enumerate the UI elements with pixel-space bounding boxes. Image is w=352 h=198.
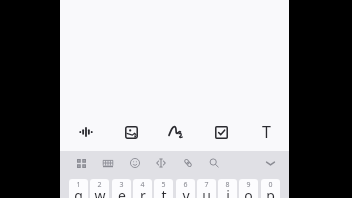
button[interactable]: 0 [261, 179, 280, 198]
staticText: 4 [140, 180, 145, 190]
staticText: 6 [183, 180, 188, 190]
button[interactable]: 8 [218, 179, 237, 198]
staticText: T [262, 121, 271, 143]
staticText: 3 [119, 180, 124, 190]
button[interactable]: Checklist [204, 115, 238, 149]
staticText: o [244, 186, 253, 198]
staticText: i [226, 186, 230, 198]
button[interactable]: Emoji [124, 152, 146, 174]
staticText: 7 [204, 180, 209, 190]
button[interactable]: 5 [154, 179, 173, 198]
button[interactable]: 4 [133, 179, 152, 198]
button[interactable]: Toolbar [70, 152, 92, 174]
staticText: u [202, 186, 211, 198]
button[interactable]: Insert image [114, 115, 148, 149]
button[interactable]: Keyboard layout [97, 152, 119, 174]
button[interactable]: 2 [90, 179, 109, 198]
staticText: 1 [76, 180, 81, 190]
button[interactable]: 6 [176, 179, 195, 198]
staticText: y [182, 186, 190, 198]
button[interactable]: Text format [249, 115, 283, 149]
staticText: e [118, 186, 126, 198]
button[interactable]: Resize keyboard [150, 152, 172, 174]
button[interactable]: Voice recording [69, 115, 103, 149]
button[interactable]: Search [203, 152, 225, 174]
button[interactable]: 9 [239, 179, 258, 198]
staticText: w [94, 186, 106, 198]
staticText: 0 [268, 180, 273, 190]
staticText: p [266, 186, 275, 198]
staticText: r [140, 186, 146, 198]
staticText: 9 [246, 180, 251, 190]
button[interactable]: Handwriting [159, 115, 193, 149]
staticText: 2 [97, 180, 102, 190]
button[interactable]: 7 [197, 179, 216, 198]
staticText: q [74, 186, 83, 198]
staticText: t [161, 186, 167, 198]
button[interactable]: Collapse keyboard [259, 152, 281, 174]
button[interactable]: 1 [69, 179, 88, 198]
button[interactable]: 3 [112, 179, 131, 198]
staticText: 5 [161, 180, 166, 190]
staticText: 8 [225, 180, 230, 190]
button[interactable]: Attach [177, 152, 199, 174]
